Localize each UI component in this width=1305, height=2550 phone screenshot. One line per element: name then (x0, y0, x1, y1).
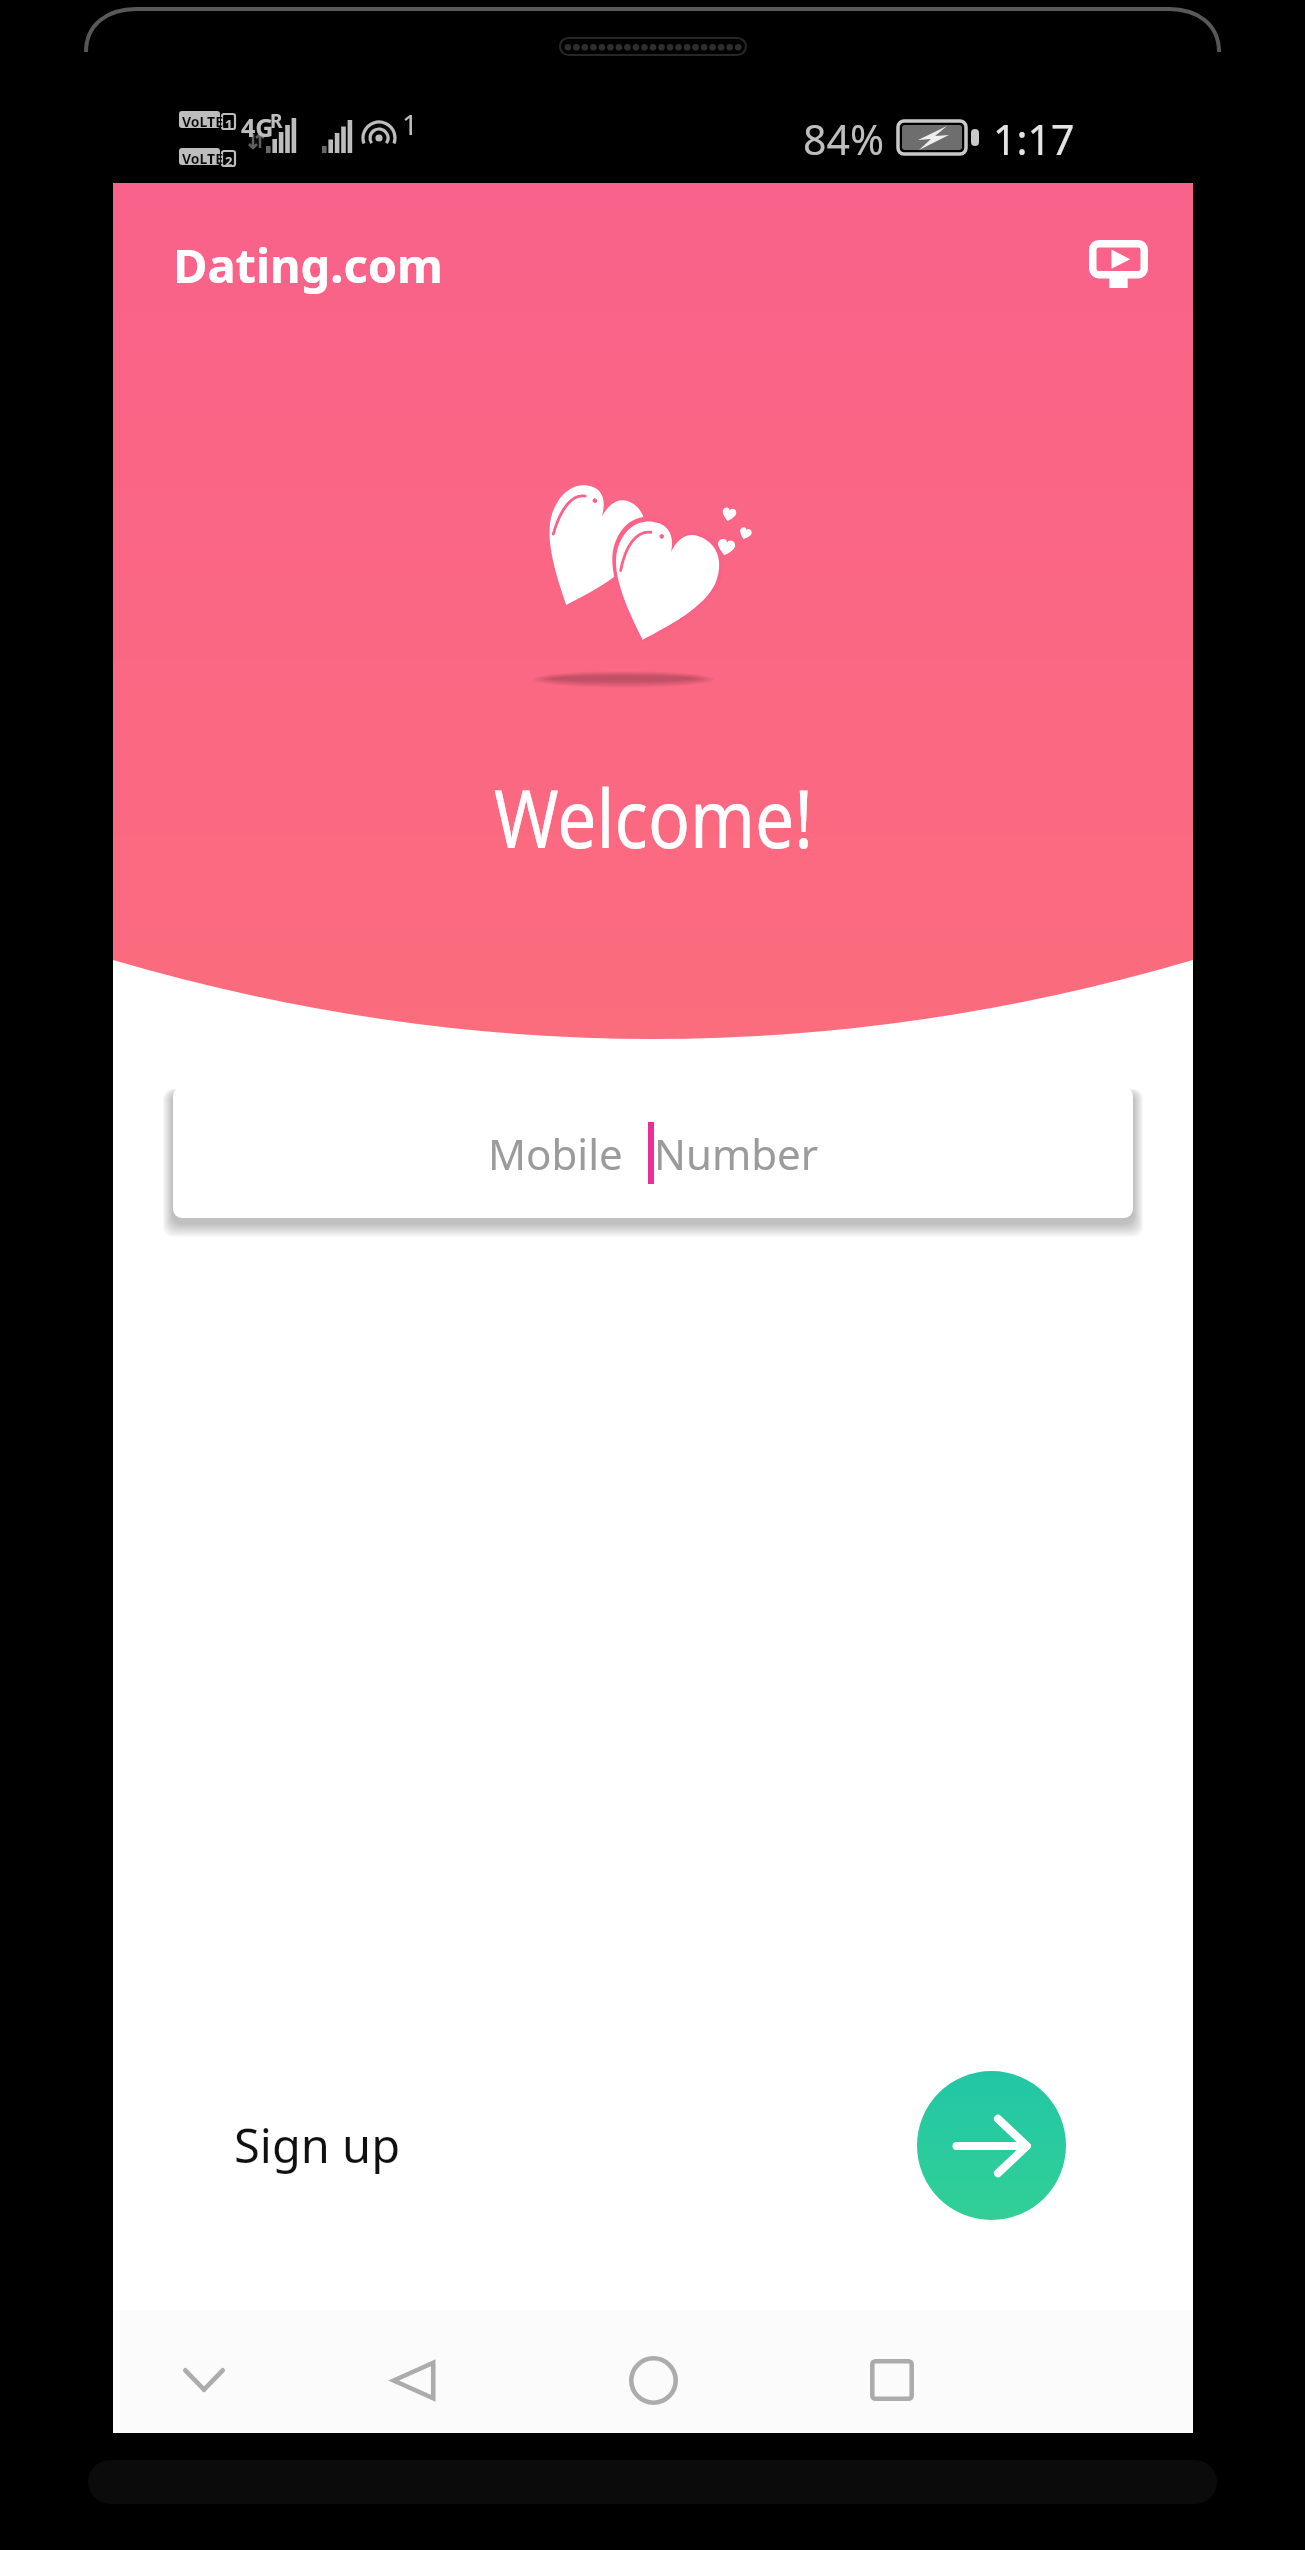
staticText: Sign up (234, 2113, 401, 2177)
staticText: Dating.com (173, 233, 443, 297)
staticText: Number (654, 1125, 819, 1182)
button[interactable]: Sign up (214, 2095, 421, 2195)
staticText: R (270, 108, 283, 134)
staticText: 1 (225, 115, 233, 133)
button[interactable]: Recent apps (832, 2320, 952, 2440)
staticText: Welcome! (494, 762, 813, 871)
button[interactable]: Watch live video (1074, 220, 1162, 308)
staticText: 4G (241, 110, 274, 144)
button[interactable]: Back (353, 2320, 473, 2440)
button[interactable]: Hide keyboard (144, 2320, 264, 2440)
staticText: 84% (803, 111, 884, 167)
staticText: 1 (402, 105, 419, 143)
button[interactable]: Home (593, 2320, 713, 2440)
staticText: 2 (225, 152, 233, 170)
button[interactable]: Next (917, 2071, 1066, 2220)
staticText: 1:17 (993, 111, 1075, 167)
staticText: Mobile (488, 1125, 623, 1182)
button[interactable]: Mobile (173, 1087, 1133, 1218)
staticText: VoLTE (182, 149, 224, 168)
staticText: VoLTE (182, 112, 224, 131)
button[interactable]: Dating.com (165, 225, 451, 305)
